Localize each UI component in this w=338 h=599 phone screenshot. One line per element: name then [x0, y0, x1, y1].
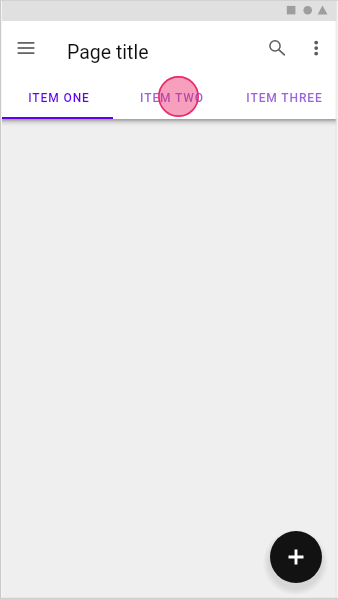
button[interactable]: ITEM TWO: [112, 73, 225, 119]
staticText: ITEM ONE: [28, 91, 90, 105]
staticText: ITEM TWO: [140, 91, 204, 105]
button[interactable]: Search: [253, 24, 298, 69]
staticText: Page title: [67, 41, 149, 64]
button[interactable]: ITEM THREE: [225, 73, 338, 119]
staticText: ITEM THREE: [246, 91, 323, 105]
button[interactable]: ITEM ONE: [0, 73, 112, 119]
button[interactable]: More options: [294, 24, 338, 69]
button[interactable]: Add: [270, 531, 322, 583]
button[interactable]: Open navigation drawer: [2, 24, 50, 72]
